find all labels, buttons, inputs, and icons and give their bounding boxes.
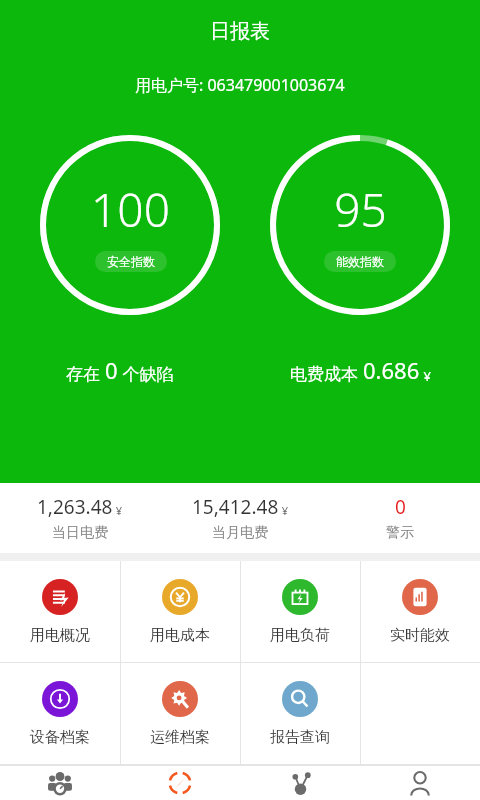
staticText: 设备档案: [30, 728, 90, 747]
staticText: 0: [395, 494, 406, 520]
staticText: 1,263.48: [37, 494, 113, 520]
staticText: 安全指数: [107, 254, 155, 269]
staticText: 当日电费: [52, 524, 108, 542]
staticText: 运维档案: [150, 728, 210, 747]
button[interactable]: 设备档案: [0, 663, 120, 764]
button[interactable]: 用电成本: [120, 561, 240, 662]
staticText: 用电概况: [30, 626, 90, 645]
staticText: 0.686: [363, 355, 420, 385]
staticText: 0: [105, 355, 118, 385]
button[interactable]: 15,412.48: [160, 483, 320, 553]
staticText: 用电负荷: [270, 626, 330, 645]
staticText: 个缺陷: [118, 362, 174, 385]
staticText: 95: [334, 178, 387, 241]
button[interactable]: 100: [39, 134, 221, 316]
staticText: 用电成本: [150, 626, 210, 645]
button[interactable]: 1,263.48: [0, 483, 160, 553]
button[interactable]: Profile: [360, 766, 480, 800]
button[interactable]: 报告查询: [240, 663, 360, 764]
button[interactable]: 实时能效: [360, 561, 480, 662]
button[interactable]: 运维档案: [120, 663, 240, 764]
staticText: 报告查询: [270, 728, 330, 747]
staticText: 日报表: [210, 19, 270, 44]
staticText: 存在: [66, 362, 105, 385]
staticText: ¥: [420, 367, 431, 385]
button[interactable]: 用电概况: [0, 561, 120, 662]
staticText: ¥: [113, 503, 123, 518]
staticText: 用电户号: 063479001003674: [135, 74, 345, 96]
staticText: 电费成本: [290, 362, 363, 385]
button[interactable]: 95: [269, 134, 451, 316]
button[interactable]: Discover: [120, 766, 240, 800]
staticText: 能效指数: [336, 254, 384, 269]
button[interactable]: Share: [240, 766, 360, 800]
staticText: 实时能效: [390, 626, 450, 645]
staticText: 100: [91, 178, 170, 241]
button[interactable]: Customers: [0, 766, 120, 800]
staticText: ¥: [279, 503, 289, 518]
button[interactable]: 0: [320, 483, 480, 553]
staticText: 15,412.48: [192, 494, 279, 520]
staticText: 警示: [386, 524, 414, 542]
button[interactable]: 用电负荷: [240, 561, 360, 662]
staticText: 当月电费: [212, 524, 268, 542]
